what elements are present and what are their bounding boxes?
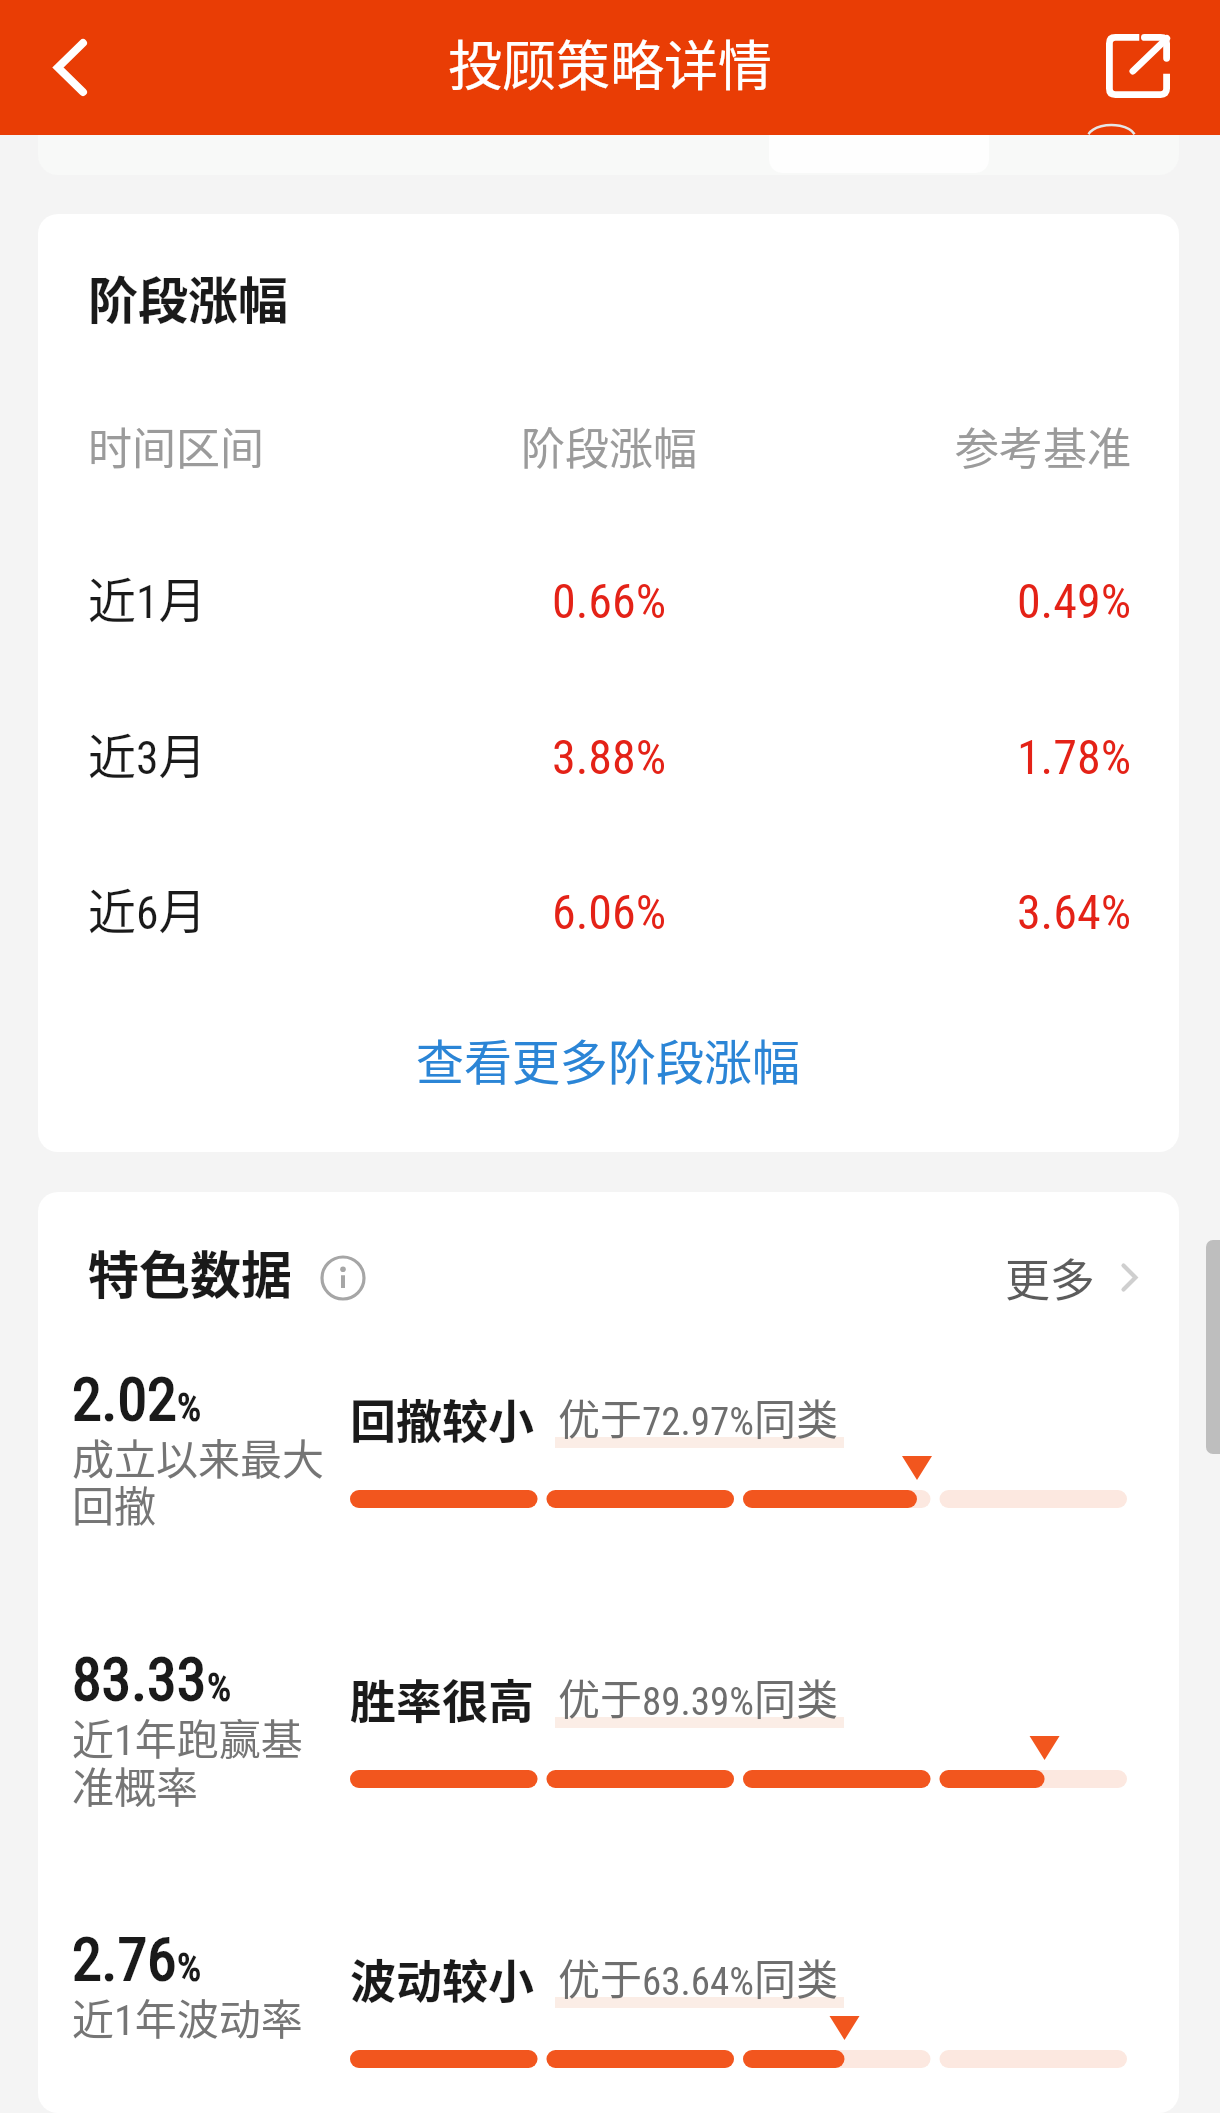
staticText: 胜率很高 [350, 1665, 534, 1732]
staticText: 阶段涨幅 [88, 261, 288, 333]
staticText: 2.76 [72, 1924, 177, 1994]
staticText: 2.02 [72, 1364, 177, 1434]
staticText: 近3月 [88, 718, 435, 788]
staticText: 回撤较小 [350, 1385, 534, 1452]
staticText: 特色数据 [88, 1235, 293, 1309]
staticText: 3.64% [783, 884, 1131, 940]
staticText: 1.78% [783, 729, 1131, 785]
staticText: 更多 [1005, 1245, 1096, 1310]
staticText: 优于89.39%同类 [558, 1666, 838, 1727]
staticText: 0.49% [783, 573, 1131, 629]
staticText: 3.88% [435, 729, 783, 785]
staticText: 成立以来最大 回撤 [72, 1426, 325, 1535]
button[interactable]: 查看更多阶段涨幅 [38, 1024, 1179, 1094]
staticText: 时间区间 [88, 414, 435, 478]
staticText: 波动较小 [350, 1945, 534, 2012]
staticText: 近1月 [88, 562, 435, 632]
staticText: 阶段涨幅 [435, 414, 783, 478]
button[interactable]: 更多 [1005, 1245, 1137, 1310]
staticText: 优于63.64%同类 [558, 1946, 838, 2007]
staticText: % [177, 1946, 202, 1991]
staticText: 查看更多阶段涨幅 [416, 1024, 801, 1094]
button[interactable]: Back [11, 0, 131, 135]
staticText: % [177, 1386, 202, 1431]
staticText: 优于72.97%同类 [558, 1386, 838, 1447]
staticText: 参考基准 [783, 414, 1131, 478]
staticText: 83.33 [72, 1644, 207, 1714]
staticText: 6.06% [435, 884, 783, 940]
staticText: % [207, 1666, 232, 1711]
button[interactable]: Share [1078, 0, 1198, 131]
staticText: 0.66% [435, 573, 783, 629]
button[interactable]: Info [320, 1255, 366, 1301]
staticText: 近1年波动率 [72, 1986, 303, 2047]
staticText: 近1年跑赢基 准概率 [72, 1706, 303, 1816]
staticText: 投顾策略详情 [448, 23, 772, 101]
staticText: 近6月 [88, 873, 435, 943]
